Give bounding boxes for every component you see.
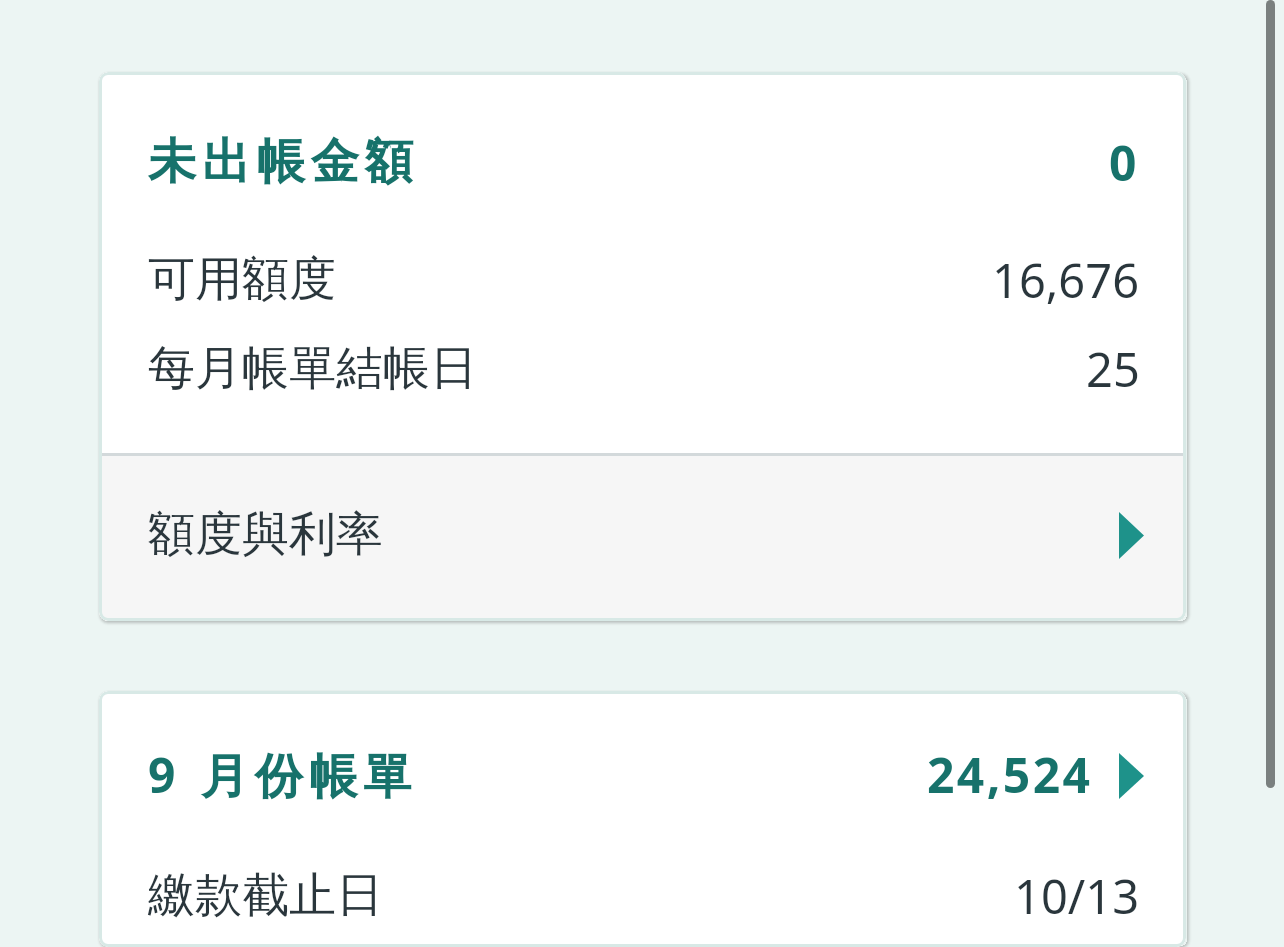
button[interactable]: 額度與利率 <box>99 456 1186 621</box>
staticText: 10/13 <box>1014 864 1140 928</box>
staticText: 9 月份帳單 <box>148 742 418 808</box>
other: View September statement <box>1119 753 1144 799</box>
staticText: 24,524 <box>927 742 1093 807</box>
staticText: 未出帳金額 <box>148 132 420 192</box>
staticText: 每月帳單結帳日 <box>148 339 477 398</box>
staticText: 額度與利率 <box>148 505 383 564</box>
staticText: 16,676 <box>992 248 1140 310</box>
staticText: 25 <box>1086 337 1140 400</box>
staticText: 可用額度 <box>148 250 336 309</box>
staticText: 繳款截止日 <box>148 866 383 925</box>
staticText: 0 <box>1109 130 1139 195</box>
other: Credit limit and interest rates <box>1119 512 1144 559</box>
button[interactable]: 9 月份帳單 <box>99 691 1186 858</box>
